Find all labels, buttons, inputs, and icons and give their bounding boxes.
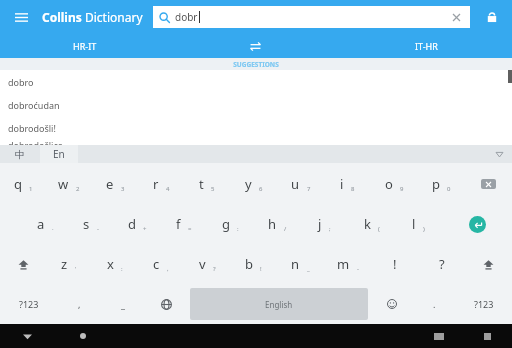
button[interactable]: z xyxy=(46,244,92,284)
button[interactable]: w xyxy=(46,163,92,204)
button[interactable]: Recent apps xyxy=(462,324,512,348)
staticText: f xyxy=(176,215,181,233)
button[interactable]: p xyxy=(418,163,465,204)
staticText: b xyxy=(245,255,253,273)
staticText: _ xyxy=(307,265,310,273)
button[interactable]: Hide keyboard xyxy=(0,324,54,348)
staticText: ? xyxy=(439,255,445,273)
staticText: ?123 xyxy=(474,298,494,310)
button[interactable]: l xyxy=(395,204,442,244)
button[interactable]: dobro xyxy=(0,70,512,93)
staticText: 8 xyxy=(351,185,355,193)
button[interactable]: h xyxy=(254,204,301,244)
staticText: t xyxy=(199,175,204,193)
button[interactable]: n xyxy=(277,244,324,284)
staticText: / xyxy=(284,225,287,233)
staticText: dobrodošli! xyxy=(8,122,56,134)
staticText: · xyxy=(52,225,54,233)
staticText: z xyxy=(61,255,68,273)
staticText: 1 xyxy=(29,185,33,193)
staticText: e xyxy=(106,175,114,193)
button[interactable]: j xyxy=(301,204,348,244)
staticText: IT-HR xyxy=(415,40,438,52)
staticText: ( xyxy=(378,225,380,233)
staticText: u xyxy=(291,175,300,193)
button[interactable]: t xyxy=(184,163,230,204)
button[interactable]: u xyxy=(277,163,324,204)
button[interactable]: dobrodošlica xyxy=(0,139,512,145)
button[interactable]: d xyxy=(114,204,160,244)
button[interactable]: b xyxy=(230,244,277,284)
button[interactable]: dobroćudan xyxy=(0,93,512,116)
staticText: h xyxy=(268,215,277,233)
staticText: _ xyxy=(121,298,125,310)
button[interactable]: En xyxy=(40,145,78,163)
button[interactable]: Expand toolbar xyxy=(486,145,512,163)
button[interactable]: Change keyboard language xyxy=(145,284,188,324)
button[interactable]: Open navigation menu xyxy=(8,4,34,30)
button[interactable]: 中 xyxy=(0,145,40,163)
button[interactable]: a xyxy=(22,204,68,244)
button[interactable]: r xyxy=(138,163,184,204)
button[interactable]: Switch input method xyxy=(416,324,462,348)
staticText: 3 xyxy=(121,185,125,193)
staticText: . xyxy=(433,298,436,310)
button[interactable]: x xyxy=(92,244,138,284)
button[interactable]: Swap languages xyxy=(170,34,341,58)
staticText: y xyxy=(245,175,252,193)
staticText: 4 xyxy=(166,185,170,193)
staticText: ' xyxy=(75,265,77,273)
button[interactable]: ?123 xyxy=(456,284,512,324)
staticText: Collins xyxy=(42,9,85,25)
staticText: , xyxy=(167,265,169,273)
button[interactable]: g xyxy=(207,204,254,244)
button[interactable]: y xyxy=(230,163,277,204)
button[interactable]: f xyxy=(160,204,207,244)
button[interactable]: _ xyxy=(101,284,145,324)
button[interactable]: Unlock premium xyxy=(480,5,504,29)
button[interactable]: Emoji xyxy=(370,284,413,324)
staticText: dobro xyxy=(8,76,34,88)
staticText: SUGGESTIONS xyxy=(233,60,279,69)
button[interactable]: Backspace xyxy=(465,163,512,204)
button[interactable]: Shift xyxy=(465,244,512,284)
staticText: dobr xyxy=(175,10,198,24)
staticText: w xyxy=(58,175,69,193)
staticText: ! xyxy=(393,255,397,273)
staticText: 0 xyxy=(447,185,451,193)
staticText: m xyxy=(337,255,350,273)
button[interactable]: HR-IT xyxy=(0,34,170,58)
button[interactable]: o xyxy=(371,163,418,204)
button[interactable]: English xyxy=(190,288,368,320)
button[interactable]: i xyxy=(324,163,371,204)
button[interactable]: Enter xyxy=(442,204,512,244)
button[interactable]: dobrodošli! xyxy=(0,116,512,139)
button[interactable]: ?123 xyxy=(0,284,57,324)
staticText: j xyxy=(318,215,322,233)
button[interactable]: Clear search xyxy=(448,9,464,25)
staticText: - xyxy=(357,265,359,273)
staticText: dobrodošlica xyxy=(8,139,63,145)
staticText: g xyxy=(222,215,230,233)
button[interactable]: IT-HR xyxy=(341,34,512,58)
button[interactable]: e xyxy=(92,163,138,204)
staticText: 9 xyxy=(400,185,404,193)
staticText: 中 xyxy=(15,148,25,161)
button[interactable]: c xyxy=(138,244,184,284)
button[interactable]: m xyxy=(324,244,371,284)
staticText: : xyxy=(237,225,239,233)
button[interactable]: Back xyxy=(54,324,112,348)
staticText: HR-IT xyxy=(73,40,97,52)
button[interactable]: ! xyxy=(371,244,418,284)
button[interactable]: k xyxy=(348,204,395,244)
button[interactable]: dobr xyxy=(153,6,470,28)
button[interactable]: , xyxy=(57,284,101,324)
button[interactable]: q xyxy=(0,163,46,204)
button[interactable]: ? xyxy=(418,244,465,284)
staticText: s xyxy=(83,215,90,233)
staticText: x xyxy=(107,255,114,273)
button[interactable]: v xyxy=(184,244,230,284)
button[interactable]: s xyxy=(68,204,114,244)
button[interactable]: Shift xyxy=(0,244,46,284)
